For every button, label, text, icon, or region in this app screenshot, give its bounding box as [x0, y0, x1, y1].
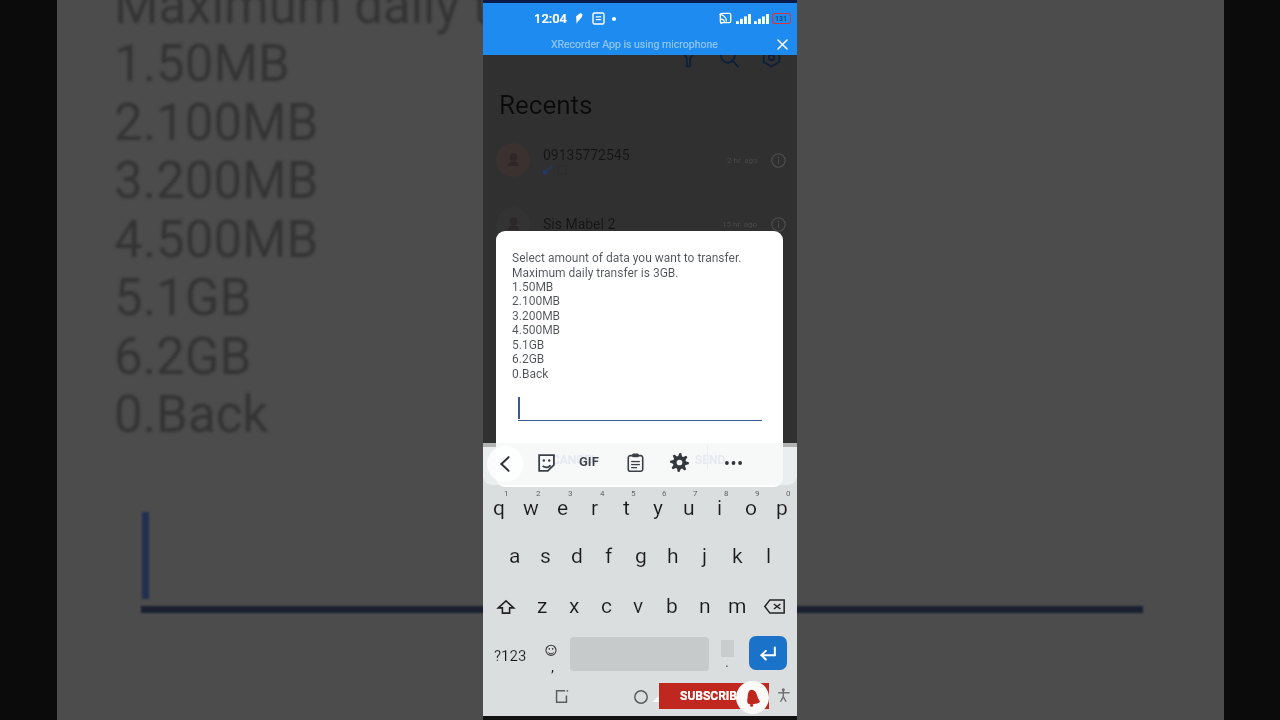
- staticText: 5.1GB: [114, 268, 252, 328]
- button[interactable]: Emoji: [534, 636, 568, 676]
- button[interactable]: Sticker: [537, 454, 555, 472]
- staticText: 5.1GB: [512, 338, 545, 352]
- button[interactable]: b: [655, 582, 688, 631]
- button[interactable]: n: [688, 582, 721, 631]
- staticText: Select amount of data you want to transf…: [512, 251, 742, 265]
- staticText: w: [523, 496, 539, 521]
- button[interactable]: Settings: [670, 453, 689, 472]
- staticText: l: [766, 544, 772, 569]
- button[interactable]: Home: [633, 689, 648, 704]
- button[interactable]: GIF: [579, 454, 599, 469]
- staticText: i: [717, 496, 723, 521]
- staticText: q: [493, 496, 505, 521]
- button[interactable]: 2: [515, 484, 547, 533]
- button[interactable]: s: [530, 532, 561, 581]
- staticText: ,: [551, 658, 554, 676]
- button[interactable]: Sis Mabel 2: [483, 202, 797, 246]
- button[interactable]: Shift: [486, 582, 526, 631]
- staticText: 7: [693, 489, 698, 498]
- staticText: 4.500MB: [512, 323, 561, 337]
- staticText: t: [623, 496, 630, 521]
- staticText: n: [699, 594, 711, 619]
- staticText: 6: [662, 489, 667, 498]
- staticText: a: [509, 544, 521, 569]
- staticText: 2.100MB: [114, 93, 319, 153]
- staticText: d: [571, 544, 583, 569]
- staticText: r: [591, 496, 599, 521]
- staticText: 0: [786, 489, 791, 498]
- staticText: x: [569, 594, 580, 619]
- button[interactable]: 09135772545: [483, 138, 797, 182]
- button[interactable]: a: [499, 532, 530, 581]
- button[interactable]: g: [625, 532, 657, 581]
- button[interactable]: Back: [487, 446, 523, 482]
- button[interactable]: Recent apps: [554, 689, 569, 704]
- button[interactable]: 7: [673, 484, 704, 533]
- staticText: c: [601, 594, 612, 619]
- button[interactable]: 5: [611, 484, 642, 533]
- button[interactable]: h: [657, 532, 689, 581]
- staticText: b: [666, 594, 678, 619]
- staticText: 2.100MB: [512, 294, 561, 308]
- button[interactable]: c: [590, 582, 622, 631]
- staticText: f: [605, 544, 613, 569]
- staticText: 3: [568, 489, 573, 498]
- button[interactable]: Back: [649, 690, 663, 704]
- staticText: 4.500MB: [114, 210, 319, 270]
- button[interactable]: f: [593, 532, 625, 581]
- staticText: Maximum daily transfer is 3GB.: [512, 266, 679, 280]
- button[interactable]: d: [561, 532, 593, 581]
- button[interactable]: 1: [483, 484, 515, 533]
- button[interactable]: 6: [642, 484, 673, 533]
- button[interactable]: z: [526, 582, 558, 631]
- button[interactable]: x: [558, 582, 590, 631]
- staticText: SUBSCRIBE: [680, 689, 744, 703]
- button[interactable]: SEND: [695, 453, 726, 467]
- staticText: j: [702, 544, 708, 569]
- staticText: 1.50MB: [512, 280, 554, 294]
- button[interactable]: Search: [719, 47, 740, 68]
- button[interactable]: Close: [776, 38, 789, 51]
- staticText: 3.200MB: [512, 309, 561, 323]
- button[interactable]: Notifications: [736, 681, 769, 714]
- button[interactable]: m: [721, 582, 754, 631]
- button[interactable]: ?123: [486, 636, 534, 676]
- staticText: .: [725, 653, 729, 671]
- button[interactable]: Call details: [771, 217, 786, 232]
- button[interactable]: Enter: [749, 636, 787, 670]
- button[interactable]: l: [753, 532, 785, 581]
- staticText: 4: [600, 489, 605, 498]
- button[interactable]: k: [721, 532, 753, 581]
- staticText: g: [635, 544, 647, 569]
- staticText: k: [732, 544, 743, 569]
- staticText: u: [683, 496, 695, 521]
- button[interactable]: 3: [547, 484, 579, 533]
- staticText: GIF: [579, 454, 599, 469]
- staticText: 1.50MB: [114, 34, 290, 94]
- button[interactable]: 9: [735, 484, 766, 533]
- button[interactable]: Filter: [678, 47, 699, 68]
- staticText: z: [537, 594, 548, 619]
- button[interactable]: Backspace: [754, 582, 795, 631]
- button[interactable]: SUBSCRIBE: [659, 683, 769, 709]
- staticText: 1: [504, 489, 509, 498]
- staticText: ?123: [494, 647, 527, 665]
- staticText: 3.200MB: [114, 151, 319, 211]
- staticText: 0.Back: [114, 385, 269, 445]
- button[interactable]: Clipboard: [626, 453, 645, 472]
- button[interactable]: CANCEL: [552, 453, 598, 467]
- button[interactable]: 4: [579, 484, 611, 533]
- staticText: 5: [631, 489, 636, 498]
- button[interactable]: Settings: [761, 47, 782, 68]
- button[interactable]: 8: [704, 484, 735, 533]
- button[interactable]: v: [622, 582, 655, 631]
- button[interactable]: Call details: [771, 153, 786, 168]
- staticText: 9: [755, 489, 760, 498]
- button[interactable]: j: [689, 532, 721, 581]
- button[interactable]: .: [711, 636, 743, 676]
- staticText: 12:04: [534, 11, 568, 26]
- button[interactable]: 0: [766, 484, 797, 533]
- staticText: 09135772545: [543, 147, 630, 163]
- button[interactable]: More options: [725, 457, 742, 469]
